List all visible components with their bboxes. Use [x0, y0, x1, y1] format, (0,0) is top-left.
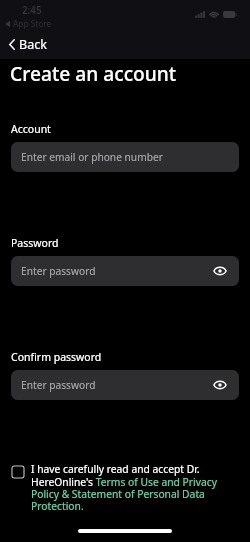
button[interactable]: Accept terms checkbox: [12, 466, 24, 478]
staticText: Enter password: [21, 378, 96, 392]
button[interactable]: Enter password: [11, 370, 239, 400]
staticText: Enter email or phone number: [21, 150, 163, 164]
button[interactable]: Show password: [212, 377, 228, 393]
button[interactable]: Back: [0, 32, 56, 56]
staticText: Back: [19, 36, 48, 53]
staticText: 2:45: [22, 4, 42, 17]
button[interactable]: Show password: [212, 263, 228, 279]
staticText: App Store: [13, 18, 52, 29]
staticText: Enter password: [21, 264, 96, 278]
staticText: Create an account: [10, 60, 177, 86]
staticText: Account: [11, 122, 51, 136]
button[interactable]: Enter password: [11, 256, 239, 286]
staticText: Password: [11, 236, 59, 250]
button[interactable]: Enter email or phone number: [11, 142, 239, 172]
staticText: Confirm password: [11, 350, 102, 364]
button[interactable]: I have carefully read and accept Dr. Her…: [31, 462, 228, 513]
